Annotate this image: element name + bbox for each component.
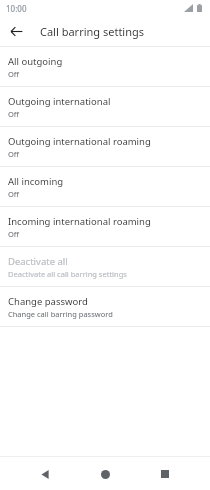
button[interactable]: All incoming <box>0 167 210 206</box>
button[interactable]: Incoming international roaming <box>0 207 210 246</box>
staticText: Off <box>8 109 20 119</box>
button[interactable]: Back <box>4 19 28 43</box>
button[interactable]: Home <box>90 459 120 489</box>
staticText: Off <box>8 69 20 79</box>
staticText: Off <box>8 229 20 239</box>
staticText: All incoming <box>8 175 64 188</box>
staticText: Call barring settings <box>40 24 145 39</box>
button[interactable]: Deactivate all <box>0 247 210 286</box>
staticText: All outgoing <box>8 55 63 68</box>
staticText: Outgoing international roaming <box>8 135 151 148</box>
button[interactable]: Outgoing international <box>0 87 210 126</box>
button[interactable]: Back <box>30 459 60 489</box>
staticText: Off <box>8 149 20 159</box>
staticText: Incoming international roaming <box>8 215 151 228</box>
staticText: Change password <box>8 295 88 308</box>
button[interactable]: Change password <box>0 287 210 326</box>
button[interactable]: Recent apps <box>150 459 180 489</box>
staticText: Change call barring password <box>8 309 113 319</box>
staticText: Deactivate all call barring settings <box>8 269 127 279</box>
button[interactable]: Outgoing international roaming <box>0 127 210 166</box>
staticText: Outgoing international <box>8 95 111 108</box>
button[interactable]: All outgoing <box>0 47 210 86</box>
staticText: Off <box>8 189 20 199</box>
staticText: Deactivate all <box>8 255 68 268</box>
staticText: 10:00 <box>6 3 27 14</box>
